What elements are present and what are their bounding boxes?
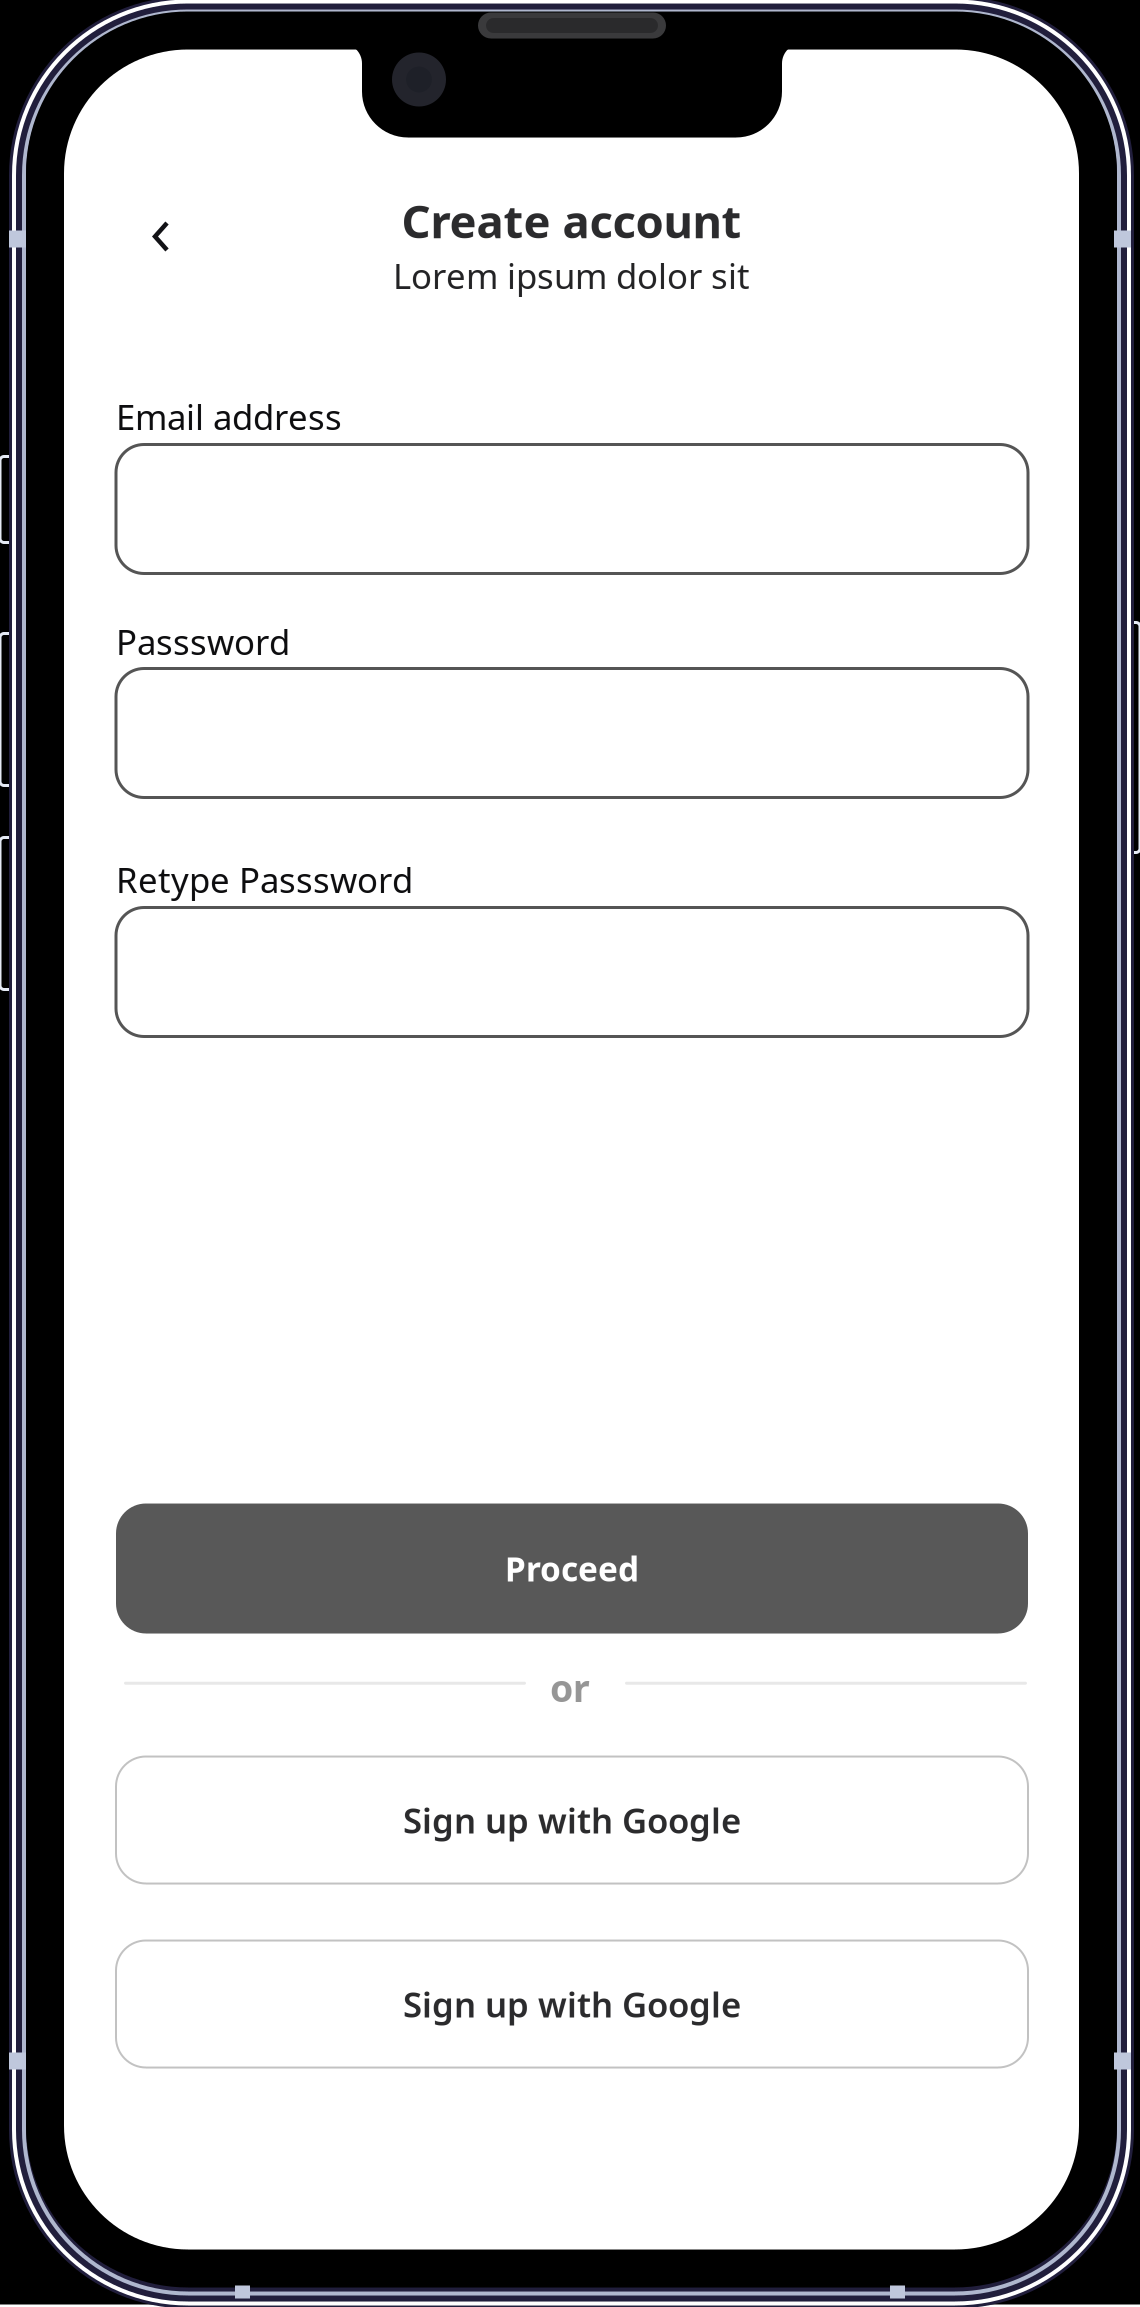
button[interactable]: Retype Passsword — [116, 907, 1028, 1036]
staticText: Create account — [401, 190, 741, 251]
staticText: Email address — [116, 393, 342, 439]
button[interactable]: Sign up with Google — [116, 1940, 1028, 2067]
button[interactable]: Passsword — [116, 668, 1028, 797]
staticText: Passsword — [116, 618, 290, 664]
staticText: Sign up with Google — [403, 1797, 741, 1843]
staticText: Lorem ipsum dolor sit — [393, 252, 750, 298]
staticText: Proceed — [505, 1546, 639, 1591]
staticText: Sign up with Google — [403, 1981, 741, 2027]
button[interactable]: Proceed — [116, 1503, 1028, 1633]
staticText: Retype Passsword — [116, 856, 413, 902]
button[interactable]: Back — [122, 197, 200, 275]
staticText: or — [550, 1663, 590, 1712]
button[interactable]: Sign up with Google — [116, 1756, 1028, 1883]
button[interactable]: Email address — [116, 444, 1028, 573]
